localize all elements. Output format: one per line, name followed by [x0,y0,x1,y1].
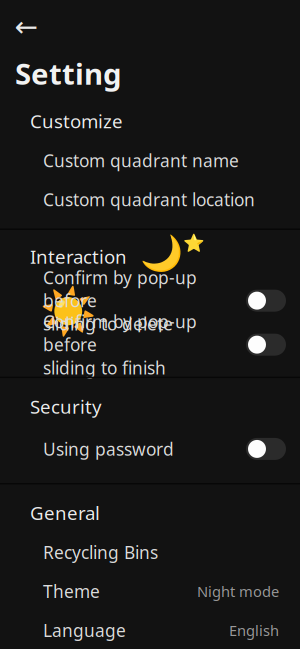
staticText: Setting [15,54,122,93]
staticText: Custom quadrant location [43,188,255,211]
staticText: Recycling Bins [43,541,158,564]
staticText: Confirm by pop-up before sliding to fini… [43,310,197,379]
button[interactable]: Using password [0,429,300,469]
staticText: Language [43,619,126,642]
staticText: 🌙 [140,233,183,273]
staticText: ⭐️ [183,233,205,253]
button[interactable]: Back [9,12,43,42]
button[interactable]: Custom quadrant location [0,184,300,214]
button[interactable]: Confirm by pop-up before sliding to fini… [0,325,300,365]
staticText: Using password [43,437,174,460]
staticText: ☀️ [40,286,96,338]
staticText: ← [14,11,37,43]
button[interactable]: Recycling Bins [0,537,300,567]
staticText: Customize [30,109,123,133]
staticText: English [229,620,279,640]
staticText: Confirm by pop-up before sliding to dele… [43,266,197,335]
staticText: General [30,500,100,525]
staticText: Custom quadrant name [43,149,239,172]
staticText: Theme [43,580,100,603]
button[interactable]: Theme [0,576,300,606]
staticText: Security [30,394,102,419]
button[interactable]: Language [0,615,300,645]
button[interactable]: Confirm by pop-up before sliding to dele… [0,281,300,321]
staticText: Interaction [30,244,127,269]
staticText: Night mode [197,581,279,601]
button[interactable]: Custom quadrant name [0,145,300,175]
